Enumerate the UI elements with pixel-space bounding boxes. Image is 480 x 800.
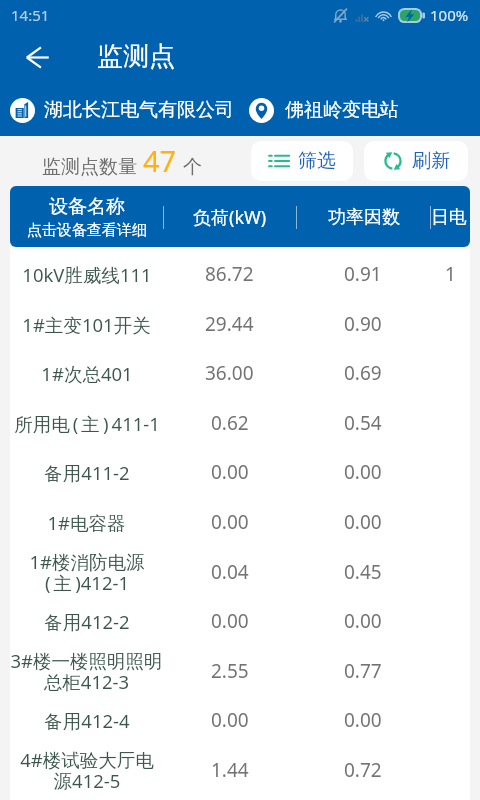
staticText: 86.72: [205, 261, 254, 287]
staticText: 0.69: [344, 360, 382, 386]
button[interactable]: 备用412-2: [10, 594, 470, 644]
staticText: 0.00: [344, 707, 382, 733]
staticText: 日电量: [431, 206, 470, 229]
staticText: 1.44: [211, 757, 249, 783]
staticText: 4#楼试验大厅电 源412-5: [20, 747, 154, 794]
staticText: 点击设备查看详细: [27, 221, 147, 240]
staticText: 1#次总401: [41, 361, 133, 386]
staticText: 佛祖岭变电站: [285, 98, 399, 122]
button[interactable]: Filter: [251, 141, 353, 181]
staticText: 0.54: [344, 410, 382, 436]
button[interactable]: 10kV胜威线111: [10, 247, 470, 297]
button[interactable]: 1#电容器: [10, 495, 470, 545]
staticText: 0.00: [344, 459, 382, 485]
staticText: 3#楼一楼照明照明 总柜412-3: [10, 648, 163, 695]
staticText: 2.55: [211, 658, 249, 684]
staticText: 备用412-2: [44, 609, 130, 634]
button[interactable]: Back: [15, 35, 59, 79]
staticText: 设备名称: [49, 195, 125, 219]
staticText: 47: [143, 141, 177, 180]
staticText: 100%: [430, 5, 469, 25]
staticText: 1#楼消防电源 ( 主 )412-1: [29, 549, 145, 596]
staticText: 备用411-2: [44, 460, 130, 485]
staticText: 36.00: [205, 360, 254, 386]
staticText: 0.04: [211, 559, 249, 585]
staticText: 0.00: [344, 509, 382, 535]
staticText: 监测点: [97, 40, 175, 73]
staticText: 0.62: [211, 410, 249, 436]
staticText: 1#电容器: [47, 510, 126, 535]
staticText: 0.00: [211, 509, 249, 535]
button[interactable]: 备用411-2: [10, 445, 470, 495]
button[interactable]: 备用412-4: [10, 693, 470, 743]
staticText: 0.90: [344, 311, 382, 337]
staticText: 功率因数: [328, 206, 400, 229]
staticText: 0.91: [344, 261, 382, 287]
other: Refresh: [382, 150, 404, 172]
staticText: 湖北长江电气有限公司: [44, 98, 234, 122]
button[interactable]: 1#楼消防电源 ( 主 )412-1: [10, 545, 470, 595]
staticText: 0.00: [211, 608, 249, 634]
staticText: 0.77: [344, 658, 382, 684]
staticText: 14:51: [11, 5, 50, 25]
staticText: 0.00: [211, 459, 249, 485]
other: Filter: [268, 150, 290, 172]
staticText: 监测点数量: [42, 155, 137, 179]
staticText: 刷新: [412, 149, 450, 173]
staticText: 筛选: [298, 149, 336, 173]
staticText: 1: [445, 261, 456, 287]
button[interactable]: 1#主变101开关: [10, 297, 470, 347]
staticText: 负荷(kW): [193, 205, 267, 230]
staticText: 所用电 ( 主 ) 411-1: [14, 411, 160, 436]
staticText: 0.00: [211, 707, 249, 733]
staticText: 备用412-4: [44, 708, 130, 733]
staticText: 29.44: [205, 311, 254, 337]
staticText: 0.72: [344, 757, 382, 783]
staticText: 个: [183, 155, 202, 179]
button[interactable]: 4#楼试验大厅电 源412-5: [10, 743, 470, 793]
button[interactable]: 所用电 ( 主 ) 411-1: [10, 396, 470, 446]
staticText: 0.45: [344, 559, 382, 585]
button[interactable]: Refresh: [364, 141, 468, 181]
staticText: 1#主变101开关: [22, 312, 151, 337]
button[interactable]: 3#楼一楼照明照明 总柜412-3: [10, 644, 470, 694]
button[interactable]: 1#次总401: [10, 346, 470, 396]
staticText: 10kV胜威线111: [22, 262, 152, 287]
staticText: 0.00: [344, 608, 382, 634]
